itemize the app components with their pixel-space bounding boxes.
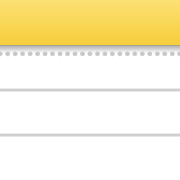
button[interactable]: Note title bar <box>0 0 180 45</box>
button[interactable]: Note body <box>0 0 180 180</box>
